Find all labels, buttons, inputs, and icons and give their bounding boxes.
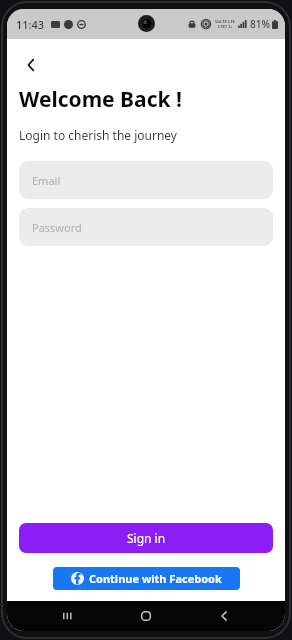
staticText: Sign in — [127, 530, 166, 546]
staticText: 11:43 — [16, 17, 45, 32]
button[interactable]: Sign in — [19, 523, 273, 553]
staticText: LTE1 — [218, 24, 227, 29]
staticText: 1+ — [228, 24, 233, 29]
button[interactable]: Home — [129, 601, 163, 631]
staticText: Welcome Back ! — [19, 85, 182, 114]
staticText: Password — [32, 220, 82, 235]
button[interactable]: Password — [19, 208, 273, 246]
button[interactable]: Back — [207, 601, 241, 631]
button[interactable]: Back — [15, 49, 47, 81]
staticText: Email — [32, 173, 61, 188]
staticText: 81% — [250, 17, 270, 31]
staticText: Login to cherish the journey — [19, 127, 177, 143]
staticText: LTE — [228, 19, 235, 24]
button[interactable]: Email — [19, 161, 273, 199]
button[interactable]: Continue with Facebook — [53, 567, 240, 590]
staticText: Continue with Facebook — [89, 571, 222, 586]
staticText: VoLTE — [215, 19, 227, 24]
button[interactable]: Recents — [51, 601, 85, 631]
